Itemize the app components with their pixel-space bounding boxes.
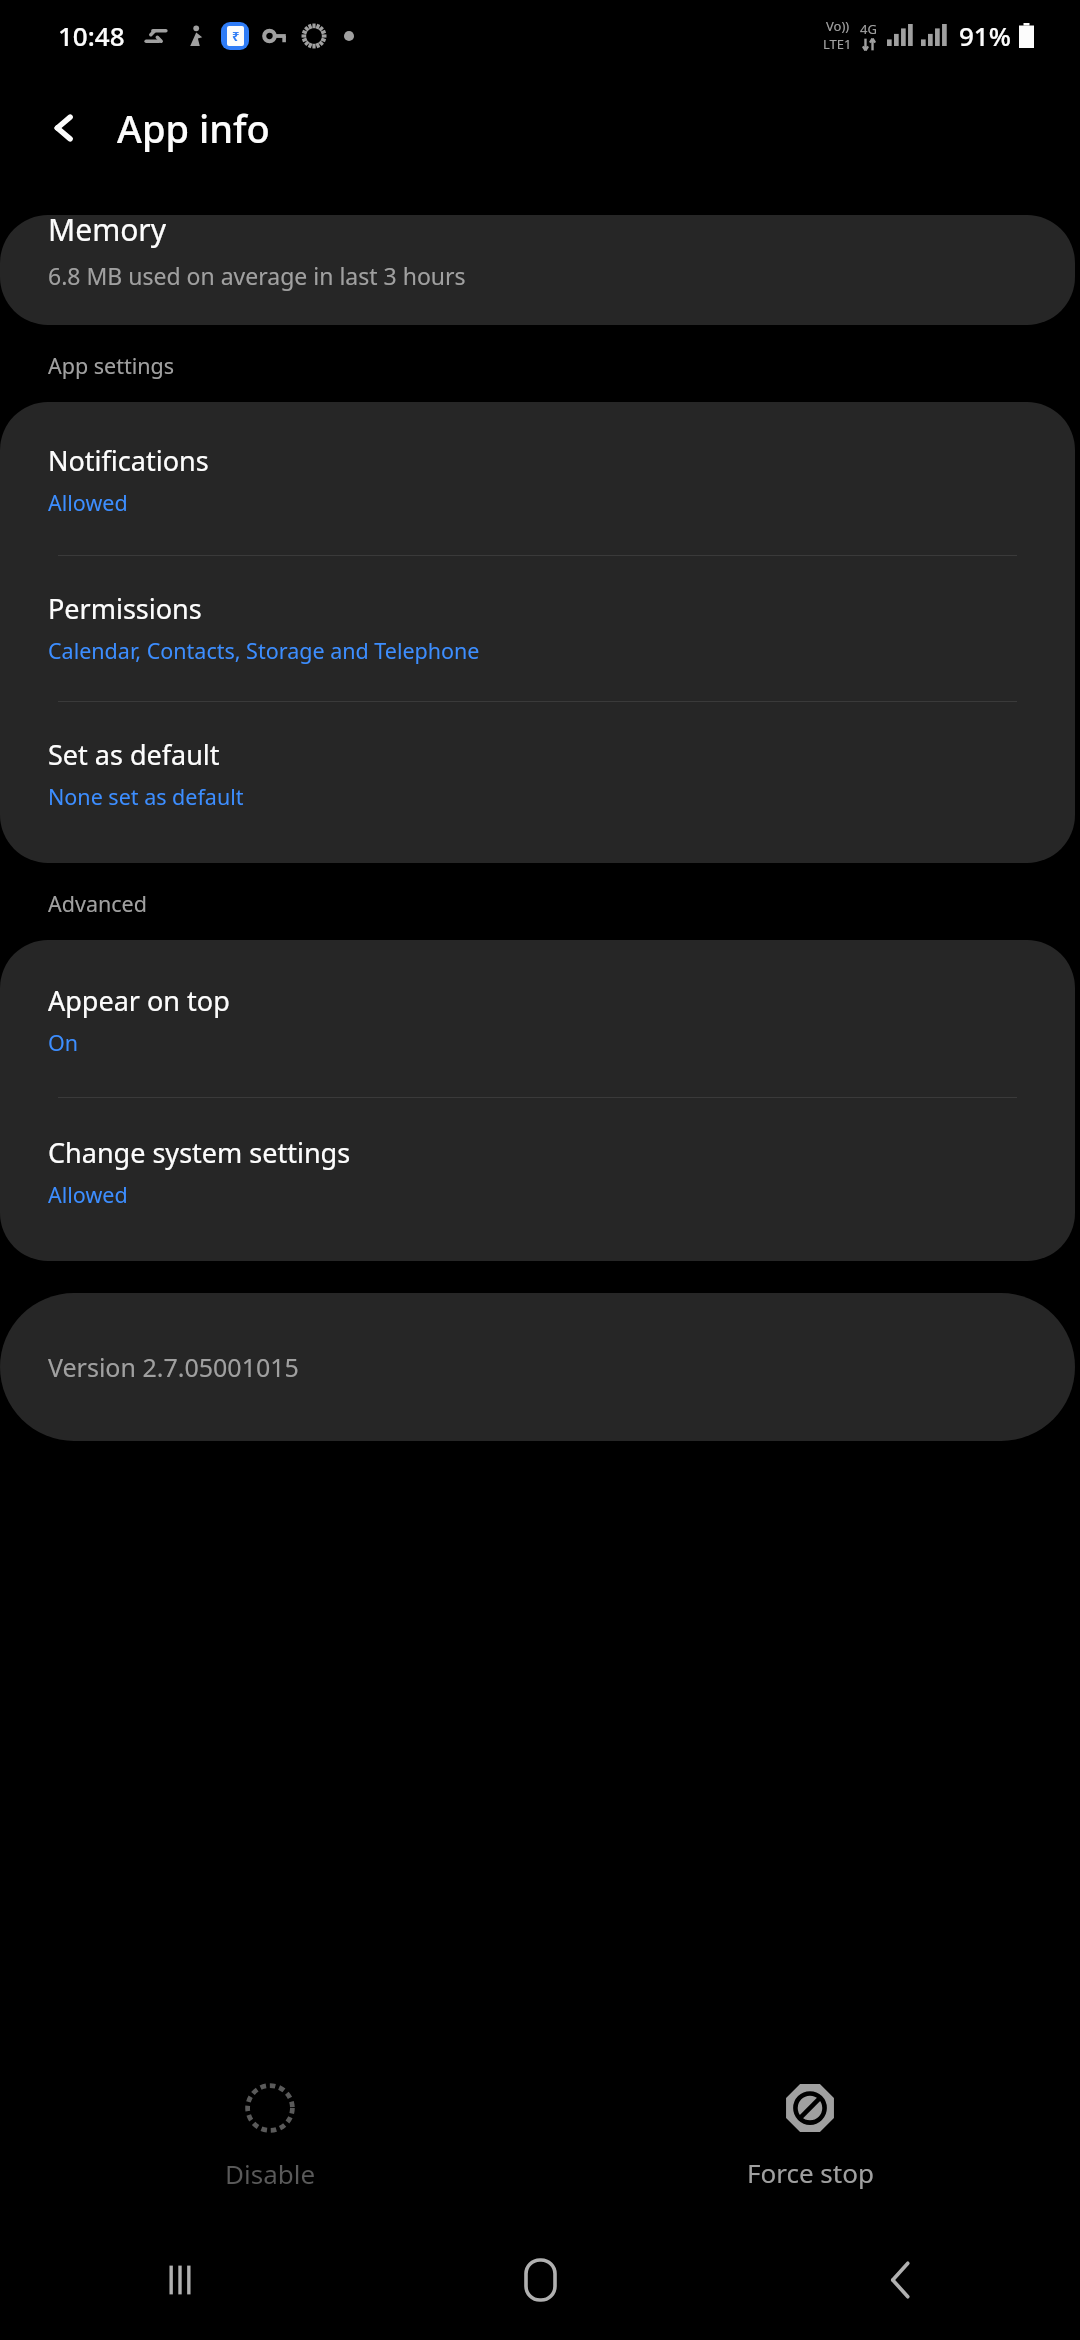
staticText: 91%	[959, 18, 1011, 53]
button[interactable]: Home	[360, 2220, 720, 2340]
button[interactable]: Change system settings	[0, 1098, 1075, 1261]
staticText: App info	[117, 102, 270, 154]
staticText: 6.8 MB used on average in last 3 hours	[48, 260, 466, 291]
staticText: Disable	[225, 2156, 316, 2191]
staticText: On	[48, 1028, 79, 1057]
button[interactable]: Version 2.7.05001015	[0, 1293, 1075, 1441]
button[interactable]: Set as default	[0, 702, 1075, 863]
staticText: 4G	[860, 20, 877, 38]
button[interactable]: Back	[720, 2220, 1080, 2340]
button[interactable]: Permissions	[0, 556, 1075, 701]
staticText: LTE1	[823, 35, 852, 53]
button[interactable]: Memory	[0, 215, 1075, 325]
staticText: Calendar, Contacts, Storage and Telephon…	[48, 636, 480, 665]
staticText: Advanced	[48, 889, 147, 918]
button[interactable]: Appear on top	[0, 940, 1075, 1097]
button[interactable]: Back	[28, 91, 102, 165]
staticText: Memory	[48, 215, 167, 250]
staticText: Change system settings	[48, 1134, 351, 1171]
staticText: Notifications	[48, 442, 209, 479]
staticText: Version 2.7.05001015	[48, 1350, 299, 1384]
button[interactable]: Force stop	[540, 2050, 1080, 2220]
button[interactable]: Notifications	[0, 402, 1075, 555]
staticText: None set as default	[48, 782, 244, 811]
staticText: 10:48	[58, 18, 125, 53]
staticText: Permissions	[48, 590, 202, 627]
button[interactable]: Recent apps	[0, 2220, 360, 2340]
staticText: Vo))	[826, 17, 850, 35]
staticText: Allowed	[48, 488, 128, 517]
staticText: App settings	[48, 351, 175, 380]
staticText: ₹	[232, 27, 240, 45]
staticText: Appear on top	[48, 982, 230, 1019]
button[interactable]: Disable	[0, 2050, 540, 2220]
staticText: Set as default	[48, 736, 220, 773]
staticText: Force stop	[747, 2155, 874, 2190]
staticText: Allowed	[48, 1180, 128, 1209]
